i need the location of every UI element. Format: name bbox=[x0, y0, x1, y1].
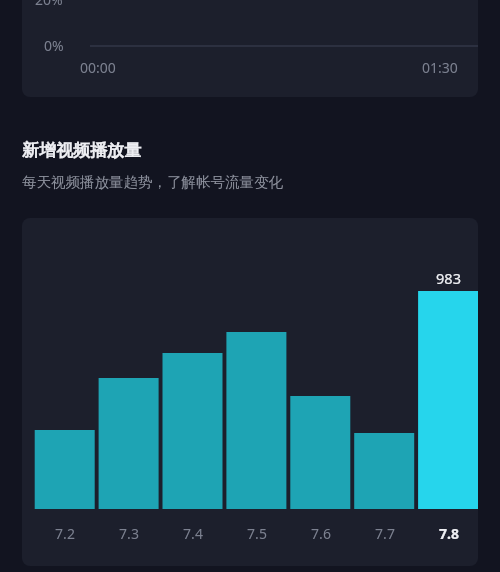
staticText: 7.8 bbox=[439, 524, 459, 543]
staticText: 新增视频播放量 bbox=[22, 140, 141, 161]
staticText: 00:00 bbox=[80, 58, 116, 77]
button[interactable]: 每天新增视频播放量柱状图 bbox=[22, 218, 478, 566]
staticText: 7.2 bbox=[55, 524, 75, 543]
button[interactable]: 播放量趋势图表 bbox=[22, 0, 478, 97]
staticText: 20% bbox=[35, 0, 63, 9]
staticText: 7.4 bbox=[183, 524, 203, 543]
staticText: 983 bbox=[436, 268, 461, 288]
staticText: 7.3 bbox=[119, 524, 139, 543]
staticText: 0% bbox=[44, 36, 64, 55]
staticText: 7.7 bbox=[375, 524, 395, 543]
staticText: 7.5 bbox=[247, 524, 267, 543]
staticText: 每天视频播放量趋势，了解帐号流量变化 bbox=[22, 173, 283, 191]
staticText: 7.6 bbox=[311, 524, 331, 543]
staticText: 01:30 bbox=[422, 58, 458, 77]
